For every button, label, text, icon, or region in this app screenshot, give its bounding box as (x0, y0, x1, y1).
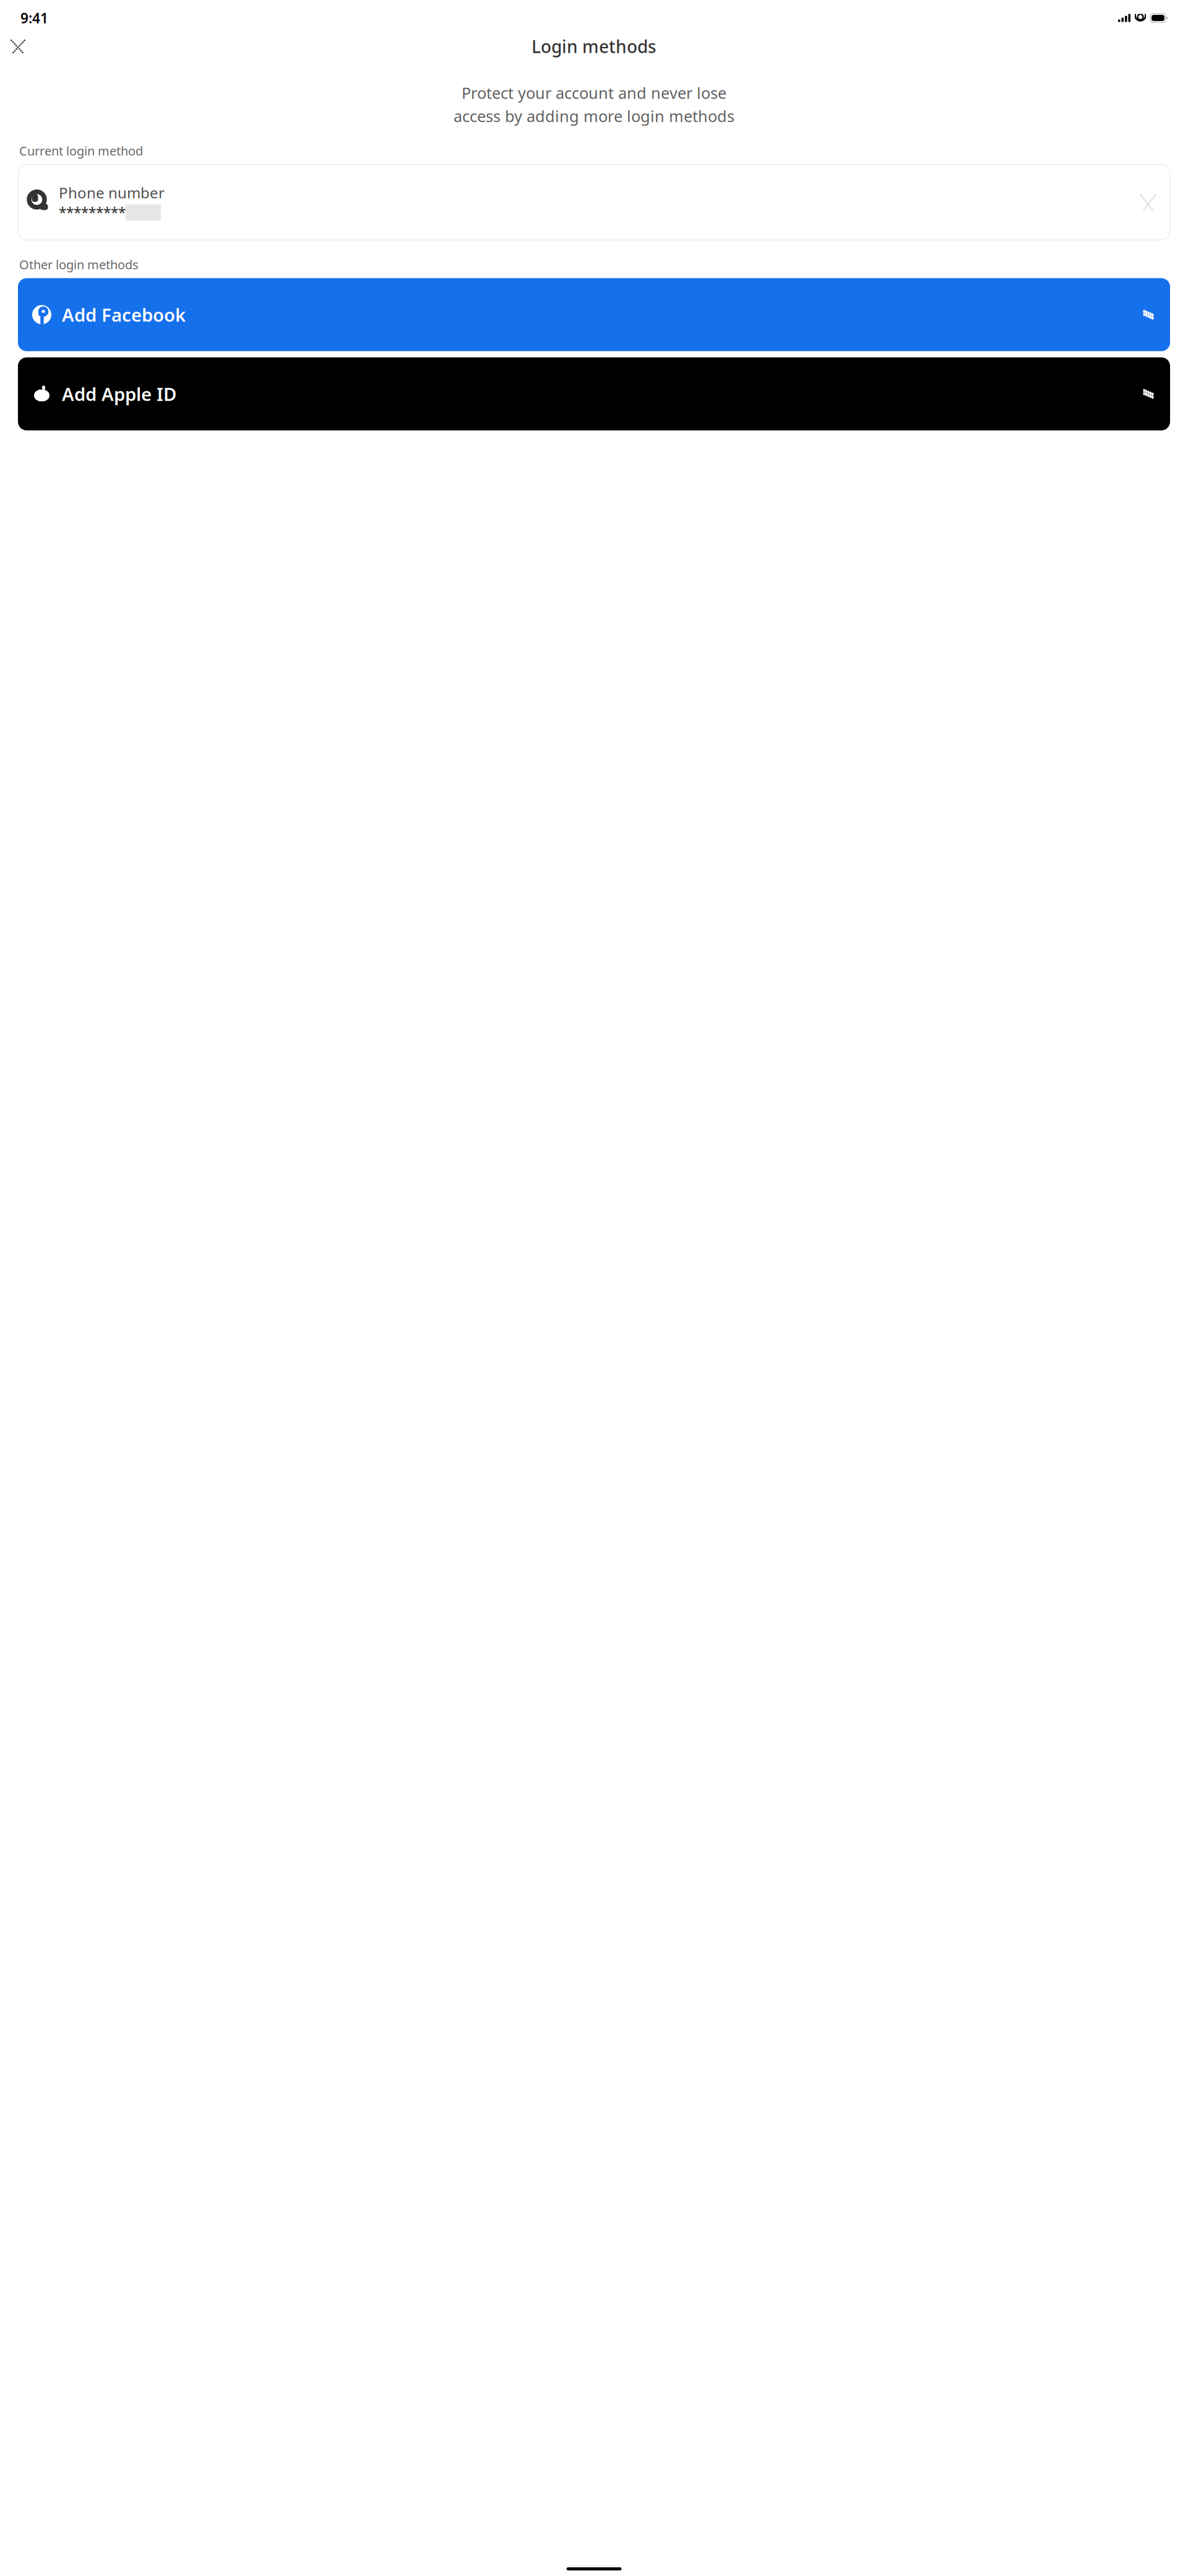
button[interactable]: Add Apple ID (18, 357, 1170, 430)
staticText: Phone number (59, 183, 165, 203)
button[interactable]: Close (4, 33, 32, 60)
staticText: Current login method (19, 143, 143, 159)
staticText: access by adding more login methods (454, 106, 734, 126)
staticText: Protect your account and never lose (462, 82, 726, 103)
staticText: Login methods (532, 35, 656, 58)
staticText: Add Apple ID (62, 382, 176, 406)
staticText: Other login methods (19, 256, 139, 273)
staticText: 9:41 (20, 9, 48, 27)
button[interactable]: Add Facebook (18, 278, 1170, 351)
staticText: Add Facebook (62, 303, 186, 327)
button[interactable]: Phone number (18, 165, 1170, 240)
staticText: ********* (59, 203, 126, 222)
